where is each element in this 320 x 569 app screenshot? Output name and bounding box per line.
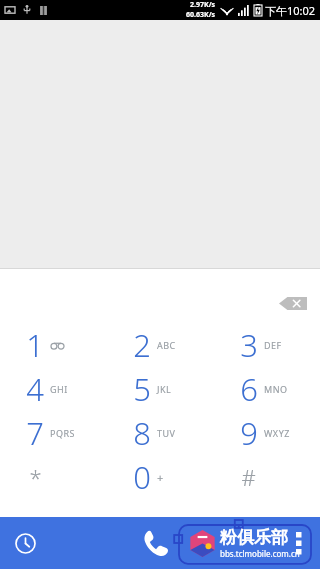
button[interactable]: # — [213, 455, 320, 499]
staticText: 8 — [133, 412, 151, 454]
staticText: WXYZ — [264, 427, 290, 439]
staticText: JKL — [157, 383, 172, 395]
staticText: 2 — [133, 324, 151, 366]
staticText: DEF — [264, 339, 282, 351]
button[interactable]: 1 — [0, 323, 106, 367]
staticText: 3 — [240, 324, 258, 366]
staticText: + — [157, 470, 164, 485]
staticText: MNO — [264, 383, 288, 395]
staticText: ABC — [157, 339, 176, 351]
staticText: 下午10:02 — [265, 3, 316, 18]
staticText: 1 — [26, 324, 44, 366]
button[interactable]: 3 — [213, 323, 320, 367]
button[interactable]: 6 — [213, 367, 320, 411]
staticText: 9 — [240, 412, 258, 454]
staticText: 0 — [133, 456, 151, 498]
staticText: 粉俱乐部 — [220, 527, 288, 548]
button[interactable]: Recent calls — [7, 525, 43, 561]
button[interactable]: 0 — [106, 455, 213, 499]
button[interactable]: 4 — [0, 367, 106, 411]
staticText: 2.97K/s — [190, 0, 216, 10]
staticText: GHI — [50, 383, 68, 395]
staticText: 4 — [26, 368, 44, 410]
staticText: 60.63K/s — [186, 10, 216, 20]
staticText: bbs.tclmobile.com.cn — [220, 548, 300, 559]
staticText: 7 — [26, 412, 44, 454]
button[interactable]: 9 — [213, 411, 320, 455]
button[interactable]: Backspace — [276, 293, 310, 313]
staticText: TUV — [157, 427, 176, 439]
button[interactable]: 2 — [106, 323, 213, 367]
staticText: # — [241, 462, 256, 492]
staticText: PQRS — [50, 427, 76, 439]
button[interactable]: 5 — [106, 367, 213, 411]
button[interactable]: * — [0, 455, 106, 499]
button[interactable]: Call — [132, 520, 178, 566]
button[interactable]: 8 — [106, 411, 213, 455]
staticText: 5 — [133, 368, 151, 410]
button[interactable]: 7 — [0, 411, 106, 455]
staticText: 6 — [240, 368, 258, 410]
staticText: * — [29, 462, 42, 492]
